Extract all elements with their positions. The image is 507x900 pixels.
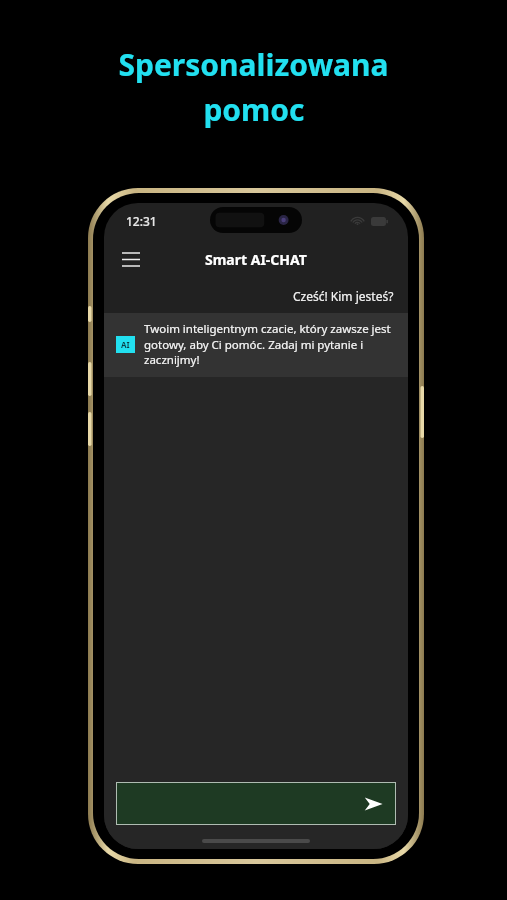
button[interactable]: AI <box>104 313 408 377</box>
staticText: Cześć! Kim jesteś? <box>293 288 394 304</box>
staticText: pomoc <box>203 89 305 130</box>
staticText: Smart AI-CHAT <box>205 250 307 269</box>
button[interactable]: Send <box>116 782 396 825</box>
staticText: 12:31 <box>126 213 157 229</box>
staticText: Spersonalizowana <box>118 44 389 85</box>
button[interactable]: Menu <box>114 242 148 276</box>
staticText: AI <box>121 339 130 350</box>
button[interactable]: Send <box>358 789 388 819</box>
staticText: Twoim inteligentnym czacie, który zawsze… <box>144 321 398 367</box>
